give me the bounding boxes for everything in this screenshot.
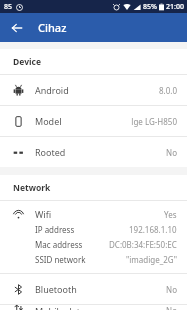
staticText: Android [35, 84, 69, 96]
staticText: lge LG-H850 [131, 116, 177, 127]
staticText: No [166, 147, 177, 158]
button[interactable]: Mobile data [0, 305, 187, 310]
staticText: Yes [164, 209, 177, 220]
staticText: IP address [35, 224, 75, 235]
staticText: Wifi [35, 208, 52, 220]
staticText: Mac address [35, 239, 83, 250]
staticText: 8.0.0 [158, 85, 177, 96]
staticText: SSID network [35, 254, 86, 265]
staticText: Cihaz [38, 20, 67, 35]
button[interactable]: Wifi [0, 201, 187, 273]
staticText: Mobile data [35, 305, 86, 310]
button[interactable]: Bluetooth [0, 274, 187, 304]
button[interactable]: Android [0, 75, 187, 105]
staticText: 192.168.1.10 [129, 224, 177, 235]
staticText: 21:00 [166, 2, 184, 12]
button[interactable]: Rooted [0, 137, 187, 167]
staticText: Bluetooth [35, 283, 77, 295]
button[interactable]: Back [6, 17, 28, 39]
staticText: "imadige_2G" [126, 254, 177, 265]
staticText: Network [13, 182, 51, 194]
staticText: No [166, 305, 177, 310]
staticText: Rooted [35, 146, 66, 158]
staticText: Device [13, 56, 41, 68]
button[interactable]: Model [0, 106, 187, 136]
staticText: DC:0B:34:FE:50:EC [109, 239, 177, 250]
staticText: 85% [143, 2, 157, 12]
staticText: No [166, 284, 177, 295]
staticText: Model [35, 115, 62, 127]
staticText: 85 [4, 2, 13, 12]
